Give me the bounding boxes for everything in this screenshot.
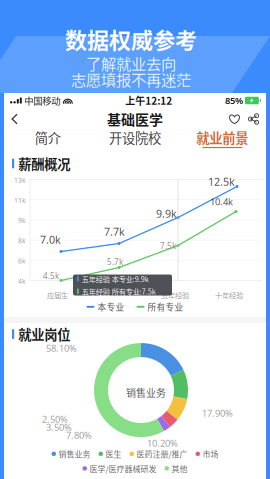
staticText: 基础医学 <box>107 109 163 129</box>
staticText: 7.7k <box>104 224 125 239</box>
staticText: 所有专业 <box>147 300 183 313</box>
button[interactable]: 返回 <box>4 107 26 131</box>
staticText: 4.5k <box>43 270 59 281</box>
staticText: 本专业 <box>97 300 124 313</box>
staticText: 志愿填报不再迷茫 <box>71 68 191 90</box>
staticText: 销售业务 <box>58 448 90 460</box>
staticText: 薪酬概况 <box>18 154 70 173</box>
staticText: 11k <box>14 196 26 205</box>
staticText: 医学/医疗器械研发 <box>89 463 156 474</box>
staticText: 医生 <box>105 448 121 460</box>
staticText: 五年经验 <box>161 289 189 300</box>
staticText: 7.0k <box>40 232 61 247</box>
staticText: 销售业务 <box>126 385 166 399</box>
staticText: 医药注册/推广 <box>136 448 187 460</box>
staticText: 9.9k <box>156 206 177 221</box>
button[interactable]: 简介 <box>4 130 91 152</box>
staticText: 十年经验 <box>215 289 243 300</box>
staticText: 中国移动 <box>24 94 60 107</box>
staticText: 开设院校 <box>109 128 161 147</box>
staticText: 了解就业去向 <box>86 52 176 74</box>
staticText: 其他 <box>171 463 187 474</box>
staticText: 5.7k <box>107 256 123 267</box>
staticText: 简介 <box>35 128 61 147</box>
staticText: 上午12:12 <box>125 93 172 108</box>
staticText: 12.5k <box>208 174 235 189</box>
button[interactable]: 就业前景 <box>179 130 266 152</box>
staticText: 17.90% <box>202 407 233 419</box>
staticText: 7.5k <box>160 240 176 251</box>
staticText: 9k <box>18 216 26 225</box>
staticText: 13k <box>14 176 26 185</box>
staticText: 3.50% <box>46 421 72 433</box>
staticText: 应届生 <box>47 289 68 300</box>
staticText: 7.80% <box>66 429 92 441</box>
staticText: 就业前景 <box>196 128 248 147</box>
staticText: 数据权威参考 <box>65 23 197 55</box>
staticText: 市场 <box>202 448 218 460</box>
staticText: 58.10% <box>46 342 77 354</box>
staticText: 6k <box>18 256 26 265</box>
staticText: 就业岗位 <box>18 324 70 344</box>
staticText: 8k <box>18 236 26 245</box>
staticText: 五年经验 所有专业:7.5k <box>82 286 156 297</box>
staticText: 10.4k <box>210 195 233 208</box>
staticText: 10.20% <box>147 437 178 449</box>
staticText: 2.50% <box>42 413 68 425</box>
staticText: 4k <box>18 277 26 286</box>
staticText: 五年经验 本专业:9.9k <box>82 273 149 284</box>
staticText: 85% <box>225 94 243 107</box>
button[interactable]: 分享 <box>244 109 263 128</box>
button[interactable]: 开设院校 <box>91 130 179 152</box>
button[interactable]: 收藏 <box>225 110 244 128</box>
